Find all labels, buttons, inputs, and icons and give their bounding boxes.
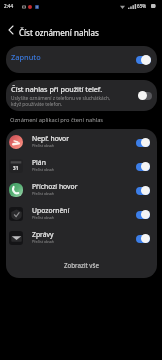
button[interactable]: Zapnuto bbox=[136, 138, 150, 147]
staticText: Oznámení aplikací pro čtení nahlas bbox=[10, 116, 104, 124]
staticText: když používáte telefon. bbox=[11, 101, 63, 107]
staticText: Příchozí hovor bbox=[32, 182, 78, 191]
button[interactable]: Zapnuto bbox=[136, 186, 150, 195]
button[interactable]: Zapnuto bbox=[136, 234, 150, 243]
button[interactable]: Zapnuto bbox=[136, 55, 151, 65]
button[interactable]: Zpět bbox=[3, 22, 19, 38]
button[interactable]: Zobrazit vše bbox=[6, 250, 157, 278]
button[interactable]: Zapnuto bbox=[136, 210, 150, 219]
button[interactable]: Zapnuto bbox=[136, 162, 150, 171]
button[interactable]: 31 bbox=[6, 154, 157, 178]
staticText: Zapnuto bbox=[11, 52, 41, 62]
button[interactable]: Nepř. hovor bbox=[6, 130, 157, 154]
staticText: Uslyšíte oznámení z telefonu ve sluchátk… bbox=[11, 95, 111, 101]
staticText: Přečíst obsah bbox=[32, 191, 54, 196]
staticText: Nepř. hovor bbox=[32, 134, 70, 143]
button[interactable]: Zprávy bbox=[6, 226, 157, 250]
button[interactable]: Příchozí hovor bbox=[6, 178, 157, 202]
staticText: Zobrazit vše bbox=[64, 261, 99, 269]
staticText: Přečíst obsah bbox=[32, 239, 54, 244]
staticText: Zprávy bbox=[32, 230, 54, 239]
button[interactable]: Číst nahlas při použití telef. bbox=[6, 80, 157, 111]
staticText: 65% bbox=[137, 3, 147, 9]
staticText: Plán bbox=[32, 158, 46, 167]
button[interactable]: Vypnuto bbox=[138, 91, 152, 100]
button[interactable]: Zapnuto bbox=[6, 46, 157, 73]
button[interactable]: Upozornění bbox=[6, 202, 157, 226]
staticText: Přečíst obsah bbox=[32, 215, 54, 220]
staticText: Přečíst obsah bbox=[32, 143, 54, 148]
staticText: Upozornění bbox=[32, 206, 70, 215]
staticText: 31 bbox=[13, 165, 19, 171]
staticText: 2:44 bbox=[4, 3, 14, 9]
staticText: Číst nahlas při použití telef. bbox=[11, 84, 103, 94]
staticText: Číst oznámení nahlas bbox=[19, 27, 99, 38]
staticText: Přečíst obsah bbox=[32, 167, 54, 172]
